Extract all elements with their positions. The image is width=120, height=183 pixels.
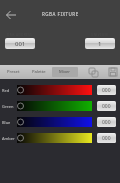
button[interactable]	[17, 133, 92, 143]
button[interactable]	[17, 101, 92, 111]
button[interactable]: Preset	[0, 65, 26, 79]
staticText: Palette	[32, 69, 46, 75]
button[interactable]: Back	[2, 6, 20, 24]
staticText: 001	[15, 40, 26, 48]
staticText: 1	[98, 40, 102, 48]
staticText: Mixer	[59, 69, 71, 75]
button[interactable]: Copy	[86, 65, 100, 79]
staticText: RGBA FIXTURE	[42, 11, 79, 17]
button[interactable]: 000	[97, 117, 116, 127]
staticText: 000	[102, 103, 111, 110]
staticText: 000	[102, 119, 111, 126]
button[interactable]	[17, 85, 92, 95]
button[interactable]: Mixer	[52, 67, 78, 77]
staticText: Green	[2, 104, 14, 109]
staticText: 000	[102, 135, 111, 142]
staticText: Blue	[2, 120, 11, 125]
button[interactable]: Save	[106, 65, 120, 79]
staticText: Red	[2, 88, 10, 93]
button[interactable]: 001	[5, 38, 35, 49]
button[interactable]: 000	[97, 133, 116, 143]
staticText: 000	[102, 87, 111, 94]
button[interactable]: 000	[97, 85, 116, 95]
button[interactable]: 000	[97, 101, 116, 111]
staticText: Amber	[2, 136, 15, 141]
staticText: Preset	[7, 69, 20, 75]
button[interactable]: 1	[85, 38, 115, 49]
button[interactable]: Palette	[26, 65, 52, 79]
button[interactable]	[17, 117, 92, 127]
